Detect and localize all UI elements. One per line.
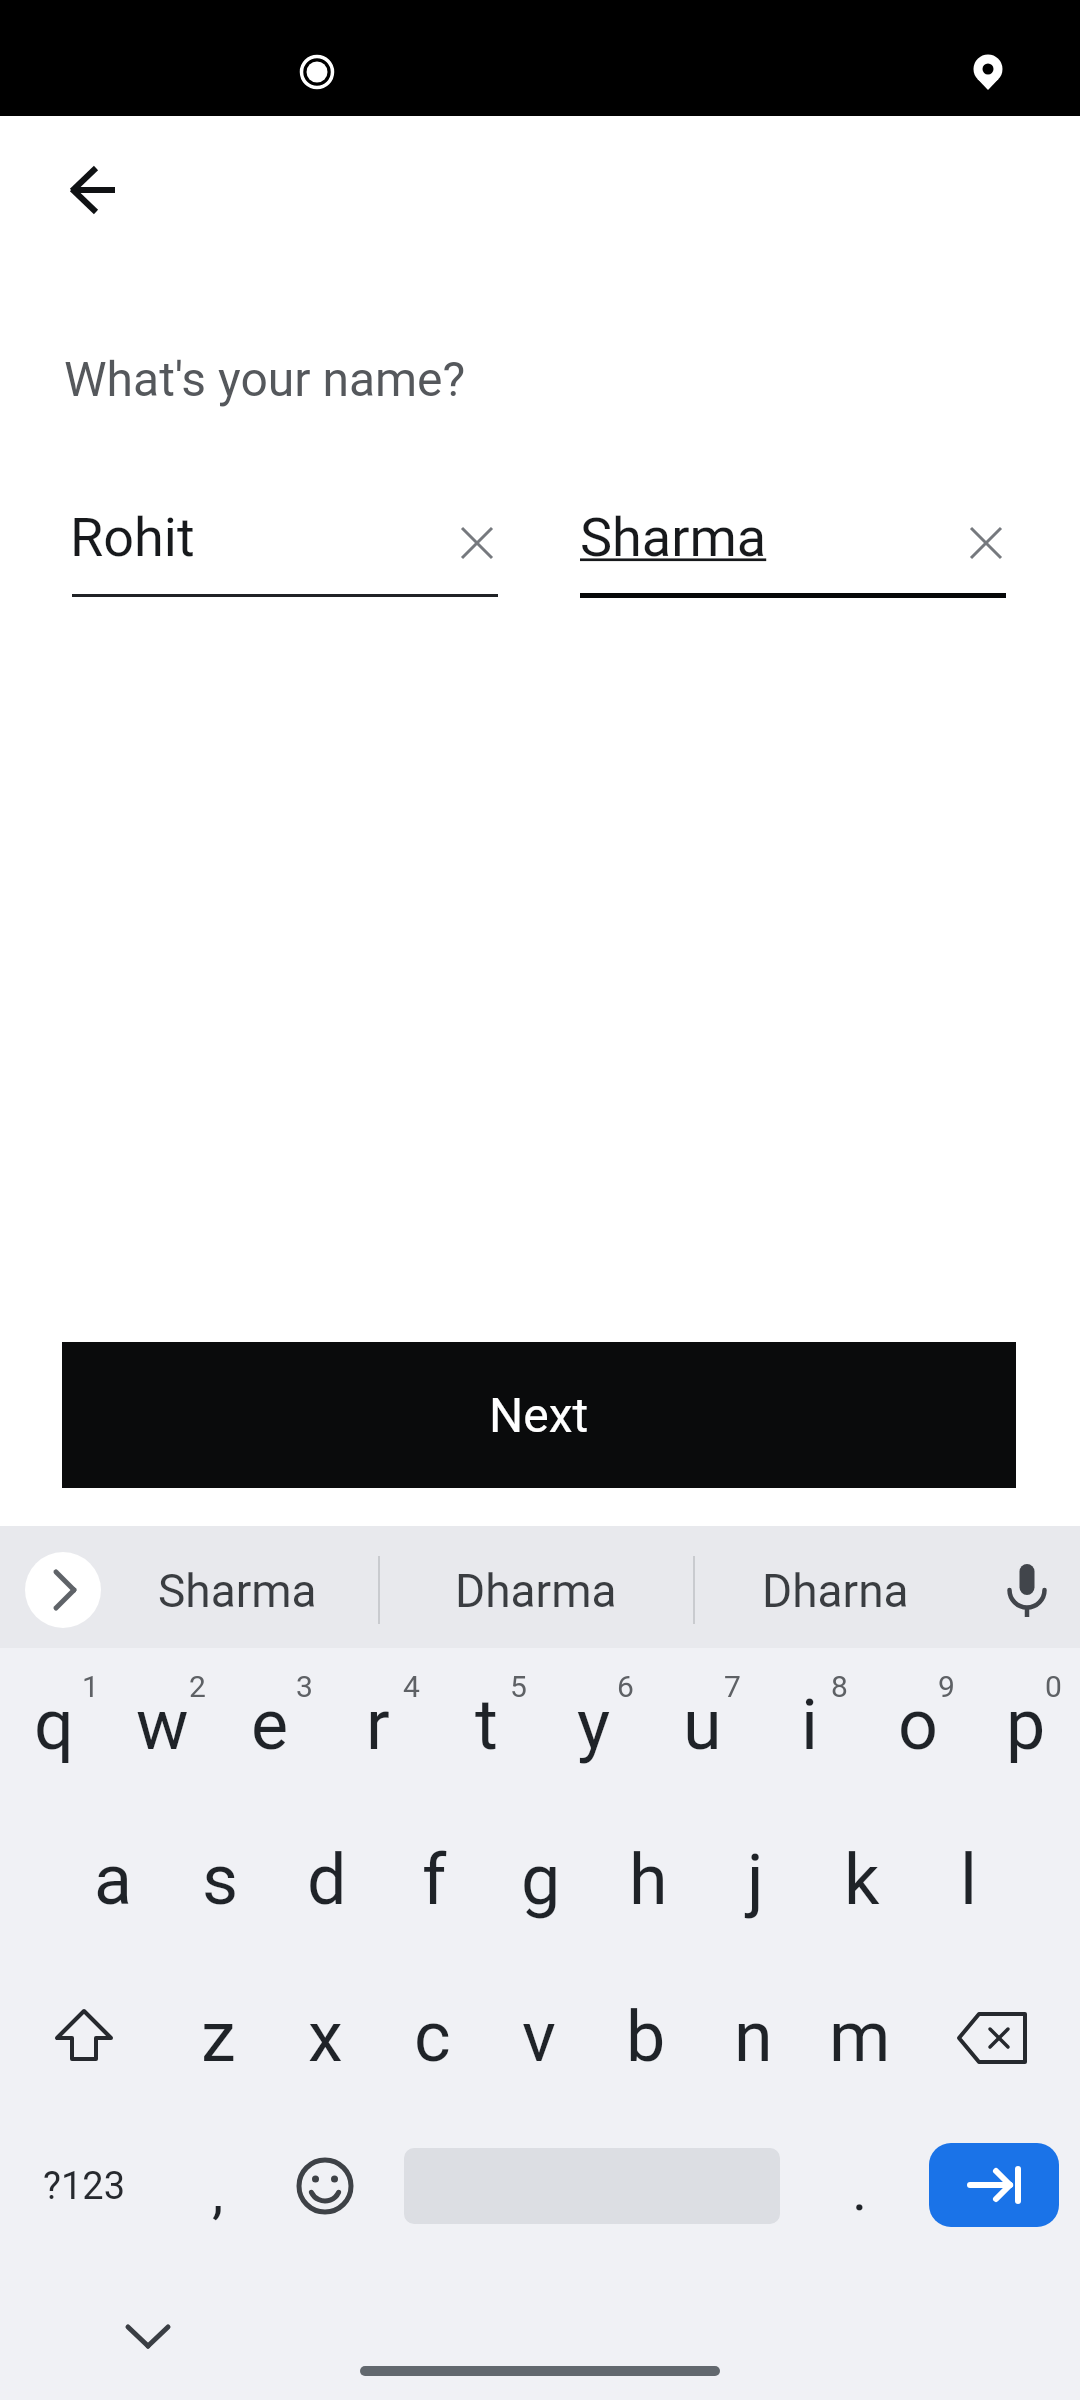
button[interactable]: m xyxy=(660,1967,1060,2107)
button[interactable] xyxy=(293,2154,357,2218)
staticText: h xyxy=(629,1839,668,1921)
staticText: 9 xyxy=(938,1669,955,1704)
staticText: 1 xyxy=(82,1669,99,1704)
button[interactable] xyxy=(968,525,1004,561)
button[interactable]: c xyxy=(232,1967,632,2107)
staticText: d xyxy=(307,1839,347,1921)
button[interactable]: j xyxy=(555,1810,955,1950)
button[interactable] xyxy=(48,2005,120,2069)
button[interactable] xyxy=(60,156,128,224)
button[interactable]: g xyxy=(341,1810,741,1950)
staticText: r xyxy=(366,1684,390,1766)
button[interactable] xyxy=(957,2010,1029,2066)
button[interactable]: o xyxy=(718,1655,1080,1795)
button[interactable]: n xyxy=(553,1967,953,2107)
staticText: e xyxy=(251,1684,289,1766)
staticText: k xyxy=(844,1839,880,1921)
staticText: Sharma xyxy=(580,506,767,569)
staticText: c xyxy=(414,1996,451,2078)
staticText: 3 xyxy=(296,1669,313,1704)
button[interactable] xyxy=(120,2315,176,2359)
staticText: v xyxy=(522,1996,556,2078)
staticText: n xyxy=(734,1996,773,2078)
button[interactable]: k xyxy=(662,1810,1062,1950)
button[interactable]: Rohit xyxy=(72,500,498,600)
button[interactable]: u xyxy=(502,1655,902,1795)
staticText: Rohit xyxy=(70,506,195,569)
staticText: f xyxy=(422,1839,447,1921)
button[interactable]: Next xyxy=(62,1342,1016,1488)
button[interactable]: b xyxy=(446,1967,846,2107)
staticText: a xyxy=(94,1839,133,1921)
staticText: What's your name? xyxy=(64,351,466,407)
button[interactable]: Dharna xyxy=(635,1521,1035,1661)
button[interactable]: w xyxy=(0,1655,362,1795)
button[interactable]: Sharma xyxy=(580,500,1006,600)
staticText: q xyxy=(34,1684,74,1766)
staticText: 7 xyxy=(724,1669,741,1704)
staticText: w xyxy=(136,1684,189,1766)
staticText: i xyxy=(801,1684,819,1766)
button[interactable]: e xyxy=(70,1655,470,1795)
button[interactable]: p xyxy=(826,1655,1080,1795)
staticText: 2 xyxy=(189,1669,206,1704)
staticText: Next xyxy=(489,1387,589,1443)
button[interactable]: x xyxy=(125,1967,525,2107)
staticText: x xyxy=(308,1996,343,2078)
button[interactable]: i xyxy=(610,1655,1010,1795)
button[interactable]: t xyxy=(286,1655,686,1795)
staticText: t xyxy=(475,1684,498,1766)
staticText: ?123 xyxy=(43,2164,126,2209)
button[interactable]: s xyxy=(20,1810,420,1950)
staticText: p xyxy=(1006,1684,1046,1766)
button[interactable]: z xyxy=(18,1967,418,2107)
staticText: b xyxy=(626,1996,666,2078)
staticText: j xyxy=(747,1839,764,1921)
staticText: l xyxy=(960,1839,978,1921)
staticText: 0 xyxy=(1045,1669,1062,1704)
button[interactable]: q xyxy=(0,1655,254,1795)
button[interactable]: y xyxy=(394,1655,794,1795)
button[interactable] xyxy=(929,2143,1059,2227)
button[interactable]: . xyxy=(660,2120,1060,2260)
staticText: o xyxy=(898,1684,938,1766)
button[interactable]: d xyxy=(127,1810,527,1950)
button[interactable]: a xyxy=(0,1810,313,1950)
button[interactable] xyxy=(25,1552,101,1628)
button[interactable] xyxy=(999,1556,1055,1624)
button[interactable]: h xyxy=(448,1810,848,1950)
button[interactable]: Dharma xyxy=(336,1521,736,1661)
staticText: y xyxy=(577,1684,611,1766)
button[interactable]: l xyxy=(769,1810,1080,1950)
button[interactable]: ?123 xyxy=(0,2116,284,2256)
staticText: 6 xyxy=(617,1669,634,1704)
button[interactable]: , xyxy=(18,2122,418,2262)
button[interactable] xyxy=(459,525,495,561)
button[interactable]: Sharma xyxy=(37,1521,437,1661)
staticText: Sharma xyxy=(158,1564,317,1618)
staticText: g xyxy=(521,1839,561,1921)
staticText: . xyxy=(852,2156,868,2224)
staticText: 4 xyxy=(403,1669,420,1704)
staticText: , xyxy=(212,2158,224,2226)
staticText: 8 xyxy=(831,1669,848,1704)
staticText: z xyxy=(201,1996,236,2078)
staticText: s xyxy=(202,1839,239,1921)
button[interactable]: v xyxy=(339,1967,739,2107)
staticText: Dharma xyxy=(455,1564,617,1618)
button[interactable]: f xyxy=(234,1810,634,1950)
button[interactable]: r xyxy=(178,1655,578,1795)
staticText: m xyxy=(829,1996,891,2078)
staticText: u xyxy=(683,1684,722,1766)
staticText: 5 xyxy=(510,1669,527,1704)
staticText: Dharna xyxy=(762,1564,909,1618)
